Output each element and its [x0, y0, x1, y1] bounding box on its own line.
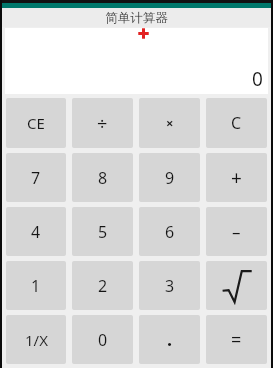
- staticText: CE: [27, 113, 45, 133]
- staticText: =: [231, 327, 242, 352]
- staticText: 7: [31, 167, 41, 189]
- staticText: 4: [31, 221, 41, 243]
- staticText: +: [231, 165, 242, 191]
- button[interactable]: ÷: [72, 98, 133, 148]
- button[interactable]: 9: [139, 153, 200, 202]
- button[interactable]: –: [206, 207, 267, 256]
- button[interactable]: 6: [139, 207, 200, 256]
- button[interactable]: =: [206, 315, 267, 364]
- staticText: 0: [252, 66, 263, 92]
- staticText: 3: [165, 275, 175, 297]
- button[interactable]: 2: [72, 261, 133, 310]
- button[interactable]: Square root: [206, 261, 267, 310]
- button[interactable]: C: [206, 98, 267, 148]
- staticText: 6: [165, 221, 175, 243]
- button[interactable]: 0: [72, 315, 133, 364]
- staticText: 9: [165, 167, 175, 189]
- button[interactable]: .: [139, 315, 200, 364]
- staticText: ÷: [97, 111, 108, 136]
- button[interactable]: 1/X: [6, 315, 66, 364]
- staticText: 1/X: [25, 330, 48, 350]
- button[interactable]: 4: [6, 207, 66, 256]
- button[interactable]: 5: [72, 207, 133, 256]
- staticText: 简单计算器: [105, 10, 168, 26]
- button[interactable]: 1: [6, 261, 66, 310]
- button[interactable]: ×: [139, 98, 200, 148]
- staticText: 2: [98, 275, 108, 297]
- button[interactable]: 7: [6, 153, 66, 202]
- staticText: 0: [98, 329, 108, 351]
- staticText: .: [167, 327, 173, 352]
- button[interactable]: 8: [72, 153, 133, 202]
- button[interactable]: 3: [139, 261, 200, 310]
- staticText: C: [231, 112, 242, 134]
- button[interactable]: +: [206, 153, 267, 202]
- staticText: 1: [31, 275, 41, 297]
- button[interactable]: CE: [6, 98, 66, 148]
- staticText: ×: [166, 114, 174, 132]
- staticText: –: [232, 220, 241, 243]
- staticText: 8: [98, 167, 108, 189]
- staticText: 5: [98, 221, 108, 243]
